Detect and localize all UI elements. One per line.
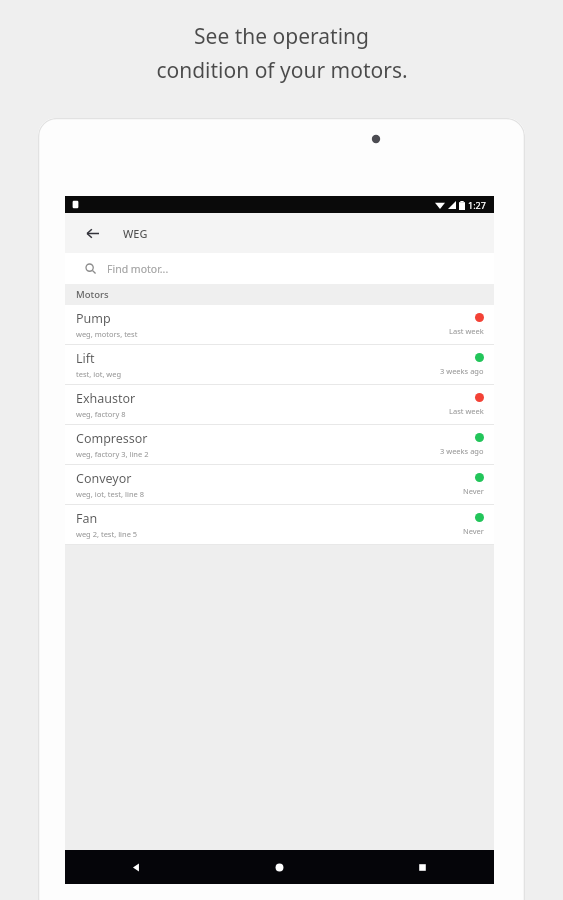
button[interactable]: Pump	[65, 305, 494, 344]
button[interactable]: Back	[79, 220, 105, 246]
staticText: 1:27	[468, 199, 486, 211]
button[interactable]: Conveyor	[65, 465, 494, 504]
staticText: Last week	[449, 406, 484, 416]
staticText: condition of your motors.	[156, 56, 408, 85]
button[interactable]: Home	[208, 850, 351, 884]
staticText: weg, motors, test	[76, 329, 138, 339]
staticText: test, iot, weg	[76, 369, 122, 379]
staticText: 3 weeks ago	[440, 446, 484, 456]
button[interactable]: Lift	[65, 345, 494, 384]
staticText: Conveyor	[76, 470, 132, 487]
staticText: Exhaustor	[76, 390, 136, 407]
button[interactable]: Recents	[351, 850, 494, 884]
staticText: Compressor	[76, 430, 148, 447]
button[interactable]: Back	[65, 850, 208, 884]
staticText: Fan	[76, 510, 98, 527]
staticText: See the operating	[194, 22, 369, 51]
staticText: weg, factory 3, line 2	[76, 449, 149, 459]
button[interactable]: Compressor	[65, 425, 494, 464]
staticText: weg, iot, test, line 8	[76, 489, 145, 499]
button[interactable]: Fan	[65, 505, 494, 544]
button[interactable]: Exhaustor	[65, 385, 494, 424]
staticText: Never	[463, 486, 484, 496]
staticText: weg, factory 8	[76, 409, 126, 419]
staticText: Pump	[76, 310, 111, 327]
staticText: Lift	[76, 350, 95, 367]
staticText: weg 2, test, line 5	[76, 529, 138, 539]
staticText: WEG	[123, 226, 148, 241]
staticText: Find motor...	[107, 262, 169, 276]
staticText: Motors	[76, 288, 109, 301]
button[interactable]: Find motor...	[65, 253, 494, 284]
staticText: Last week	[449, 326, 484, 336]
staticText: 3 weeks ago	[440, 366, 484, 376]
staticText: Never	[463, 526, 484, 536]
